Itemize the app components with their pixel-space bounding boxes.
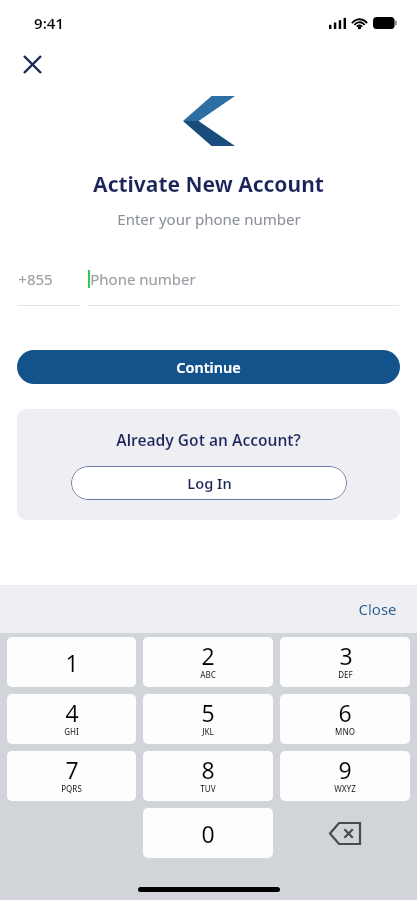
staticText: 3 — [339, 640, 353, 671]
button[interactable]: +855 — [18, 269, 80, 306]
button[interactable]: Phone number — [88, 269, 399, 306]
button[interactable]: 4 — [7, 694, 136, 744]
button[interactable]: 6 — [280, 694, 410, 744]
staticText: Activate New Account — [93, 170, 324, 199]
staticText: JKL — [202, 726, 214, 737]
staticText: 5 — [201, 697, 215, 728]
staticText: 6 — [338, 697, 352, 728]
staticText: 0 — [201, 818, 215, 849]
staticText: GHI — [64, 726, 79, 737]
button[interactable]: 0 — [143, 808, 273, 858]
button[interactable]: Log In — [71, 466, 347, 500]
staticText: Already Got an Account? — [116, 429, 301, 450]
button[interactable]: 8 — [143, 751, 273, 801]
button[interactable]: 2 — [143, 637, 273, 687]
button[interactable]: 7 — [7, 751, 136, 801]
staticText: TUV — [200, 783, 216, 794]
button[interactable]: Close — [338, 591, 417, 627]
button[interactable]: Close — [14, 46, 50, 82]
staticText: 9 — [338, 754, 352, 785]
staticText: 2 — [201, 640, 215, 671]
staticText: MNO — [335, 726, 355, 737]
staticText: WXYZ — [334, 783, 356, 794]
staticText: Phone number — [90, 269, 196, 289]
staticText: ABC — [200, 669, 216, 680]
button[interactable]: 5 — [143, 694, 273, 744]
staticText: 4 — [65, 697, 79, 728]
button[interactable]: Continue — [17, 350, 400, 384]
staticText: DEF — [338, 669, 353, 680]
staticText: Enter your phone number — [117, 209, 301, 229]
staticText: Close — [358, 599, 397, 619]
button[interactable]: 9 — [280, 751, 410, 801]
staticText: PQRS — [61, 783, 82, 794]
staticText: +855 — [18, 269, 53, 289]
button[interactable]: 3 — [280, 637, 410, 687]
button[interactable]: 1 — [7, 637, 136, 687]
staticText: 7 — [65, 754, 79, 785]
staticText: 8 — [201, 754, 215, 785]
staticText: Log In — [187, 473, 232, 493]
staticText: 9:41 — [34, 13, 64, 33]
staticText: 1 — [65, 647, 79, 678]
button[interactable]: Backspace — [280, 808, 410, 858]
staticText: Continue — [176, 357, 241, 377]
